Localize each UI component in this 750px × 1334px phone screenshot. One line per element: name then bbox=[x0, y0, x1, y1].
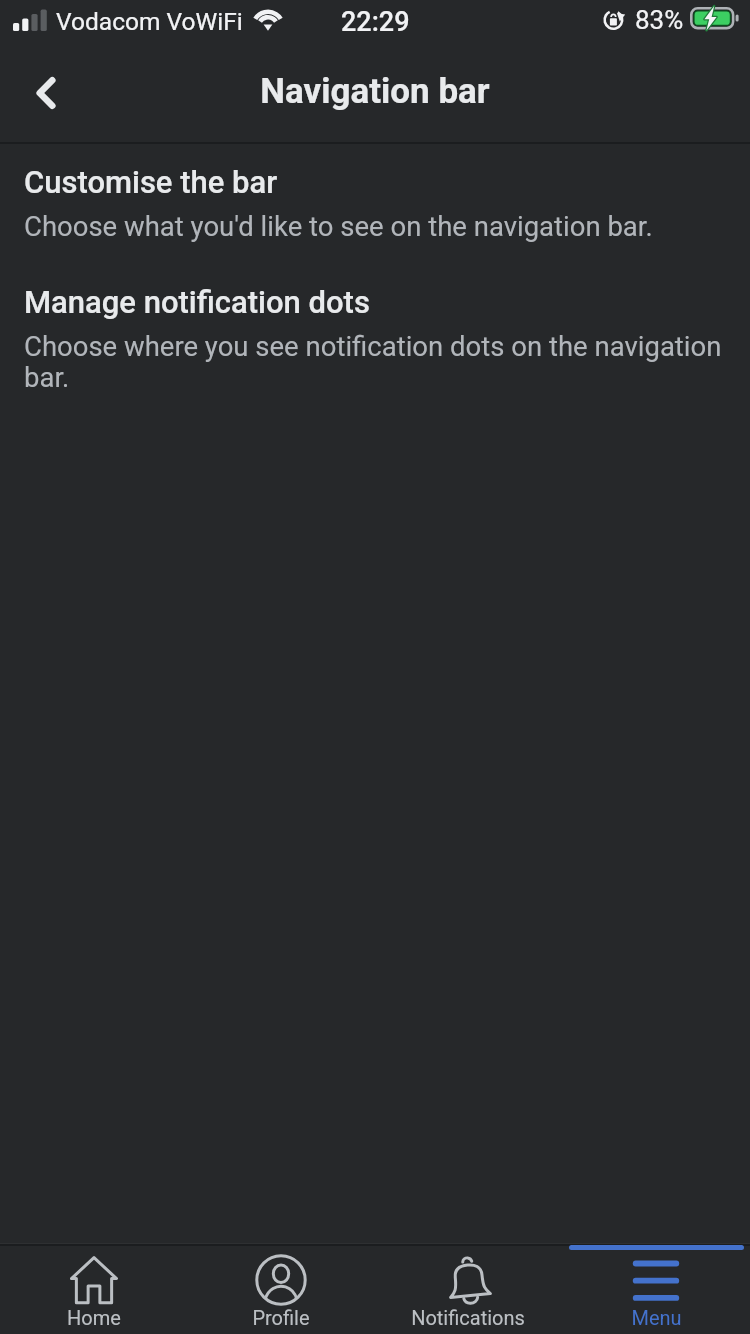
button[interactable]: Notifications bbox=[374, 1243, 562, 1334]
button[interactable]: Customise the bar bbox=[0, 164, 750, 242]
button[interactable]: Manage notification dots bbox=[0, 284, 750, 394]
staticText: Customise the bar bbox=[24, 164, 278, 200]
staticText: Profile bbox=[252, 1306, 310, 1329]
button[interactable]: Home bbox=[0, 1243, 187, 1334]
staticText: Vodacom VoWiFi bbox=[56, 7, 243, 36]
button[interactable]: Menu bbox=[562, 1243, 750, 1334]
staticText: Choose where you see notification dots o… bbox=[24, 330, 729, 394]
staticText: Notifications bbox=[411, 1306, 525, 1329]
staticText: Manage notification dots bbox=[24, 284, 370, 320]
staticText: Menu bbox=[631, 1306, 682, 1329]
button[interactable]: Profile bbox=[187, 1243, 374, 1334]
staticText: 22:29 bbox=[341, 6, 410, 38]
button[interactable]: Back bbox=[15, 62, 77, 124]
staticText: 83% bbox=[635, 5, 684, 35]
staticText: Home bbox=[67, 1306, 121, 1329]
staticText: Choose what you'd like to see on the nav… bbox=[24, 210, 653, 242]
staticText: Navigation bar bbox=[0, 71, 750, 112]
